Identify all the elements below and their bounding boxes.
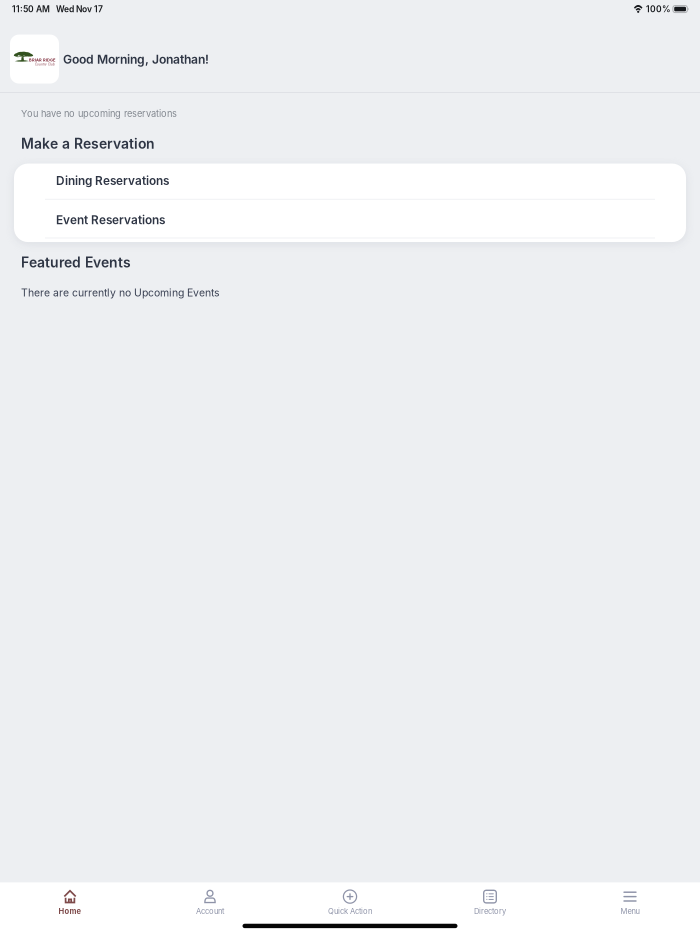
staticText: Menu: [620, 907, 639, 916]
staticText: Quick Action: [328, 907, 372, 916]
button[interactable]: Dining Reservations: [14, 163, 686, 199]
button[interactable]: Menu: [560, 881, 700, 916]
staticText: Make a Reservation: [21, 135, 155, 152]
staticText: There are currently no Upcoming Events: [21, 286, 220, 299]
staticText: Wed Nov 17: [56, 4, 103, 14]
staticText: Directory: [474, 907, 506, 916]
button[interactable]: Home: [0, 881, 140, 916]
staticText: Good Morning, Jonathan!: [63, 52, 209, 67]
button[interactable]: Event Reservations: [14, 200, 686, 237]
staticText: Featured Events: [21, 254, 131, 271]
staticText: Event Reservations: [56, 213, 165, 227]
staticText: 100%: [646, 4, 671, 14]
staticText: BRIAR RIDGE: [29, 58, 55, 62]
staticText: Home: [58, 907, 81, 916]
staticText: Country Club: [35, 63, 55, 66]
button[interactable]: Quick Action: [280, 881, 420, 916]
staticText: Dining Reservations: [56, 174, 169, 188]
button[interactable]: Directory: [420, 881, 560, 916]
button[interactable]: Account: [140, 881, 280, 916]
staticText: Account: [196, 907, 224, 916]
staticText: You have no upcoming reservations: [21, 108, 177, 119]
staticText: 11:50 AM: [12, 4, 50, 14]
